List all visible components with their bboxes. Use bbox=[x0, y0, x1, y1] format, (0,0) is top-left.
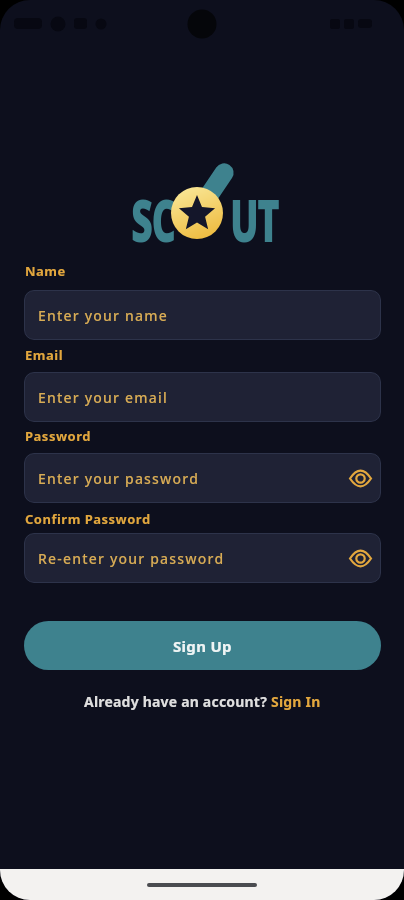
staticText: Email bbox=[25, 346, 64, 364]
staticText: Password bbox=[25, 427, 91, 445]
staticText: Name bbox=[25, 262, 66, 280]
button[interactable]: Enter your email bbox=[24, 372, 381, 422]
staticText: UT bbox=[230, 178, 279, 256]
staticText: Sign Up bbox=[173, 636, 232, 656]
staticText: Enter your email bbox=[38, 388, 168, 407]
staticText: Confirm Password bbox=[25, 510, 151, 528]
staticText: SC bbox=[131, 178, 175, 256]
button[interactable]: Enter your name bbox=[24, 290, 381, 340]
button[interactable]: Re-enter your password bbox=[24, 533, 381, 583]
staticText: Already have an account? bbox=[84, 692, 271, 711]
button[interactable]: Already have an account? bbox=[0, 692, 404, 711]
staticText: Enter your name bbox=[38, 306, 168, 325]
staticText: Sign In bbox=[271, 692, 321, 711]
button[interactable]: Enter your password bbox=[24, 453, 381, 503]
button[interactable]: Sign Up bbox=[24, 621, 381, 670]
staticText: Enter your password bbox=[38, 469, 200, 488]
staticText: Re-enter your password bbox=[38, 549, 225, 568]
